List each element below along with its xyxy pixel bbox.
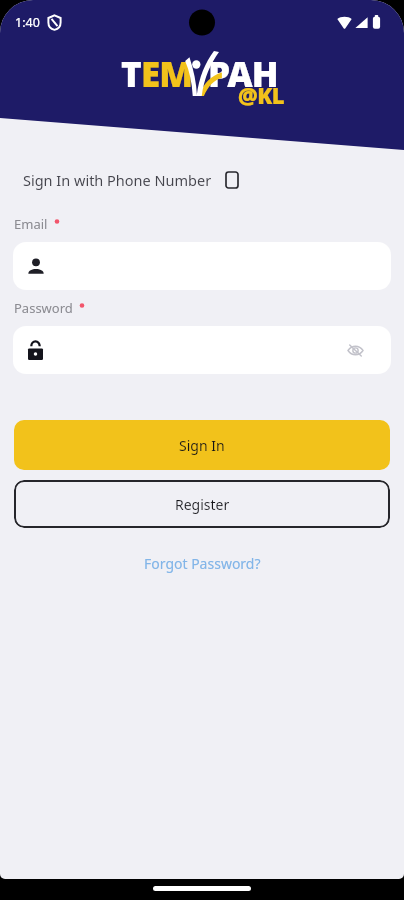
staticText: @KL [238,80,285,110]
other: Password [28,341,43,360]
staticText: Sign In with Phone Number [23,170,212,190]
staticText: Register [175,495,230,514]
other: Sign in with phone number [226,172,238,188]
staticText: Password [14,299,73,317]
other: Email [28,258,44,274]
button[interactable]: Password [13,326,391,374]
staticText: EM [141,50,193,98]
staticText: Sign In [179,436,225,455]
staticText: T [121,50,141,98]
button[interactable]: Register [14,480,390,528]
button[interactable]: Forgot Password? [138,548,267,579]
button[interactable]: Sign In [14,420,390,470]
button[interactable]: Email [13,242,391,290]
staticText: PAH [208,50,278,98]
staticText: Email [14,215,48,233]
staticText: 1:40 [15,14,40,31]
staticText: Forgot Password? [144,554,261,573]
button[interactable]: Sign In with Phone Number [9,163,252,197]
other: Toggle password visibility [347,342,364,359]
